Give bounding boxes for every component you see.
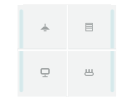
button[interactable]: Scenes xyxy=(67,50,111,96)
button[interactable]: Blinds xyxy=(67,4,111,50)
button[interactable]: Television xyxy=(23,50,67,96)
button[interactable]: Lights xyxy=(23,4,67,50)
